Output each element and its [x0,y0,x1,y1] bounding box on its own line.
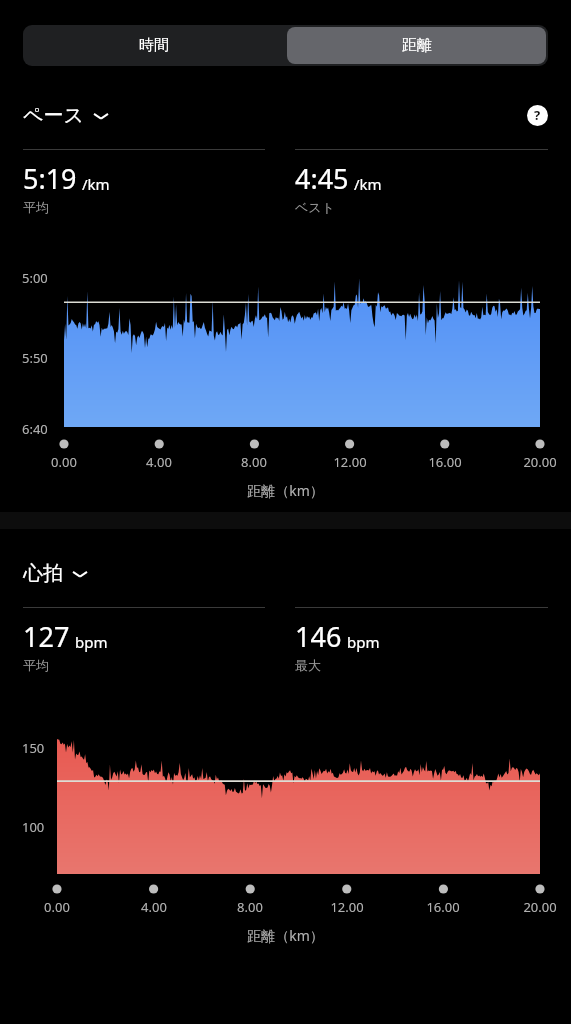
button[interactable]: Help [523,101,551,129]
staticText: 8.00 [222,453,286,471]
staticText: 16.00 [413,453,477,471]
staticText: 100 [22,818,45,836]
staticText: 12.00 [318,453,382,471]
button[interactable]: ペース [23,103,109,128]
button[interactable]: 距離 [287,27,546,64]
staticText: 距離 [402,36,432,55]
staticText: bpm [75,632,108,652]
staticText: 4.00 [122,898,186,916]
staticText: 距離（km） [0,926,571,945]
staticText: 127 [23,618,70,655]
staticText: ベスト [295,199,335,215]
staticText: 4:45 [295,160,349,197]
staticText: 8.00 [218,898,282,916]
staticText: 平均 [23,199,49,215]
staticText: 5:00 [22,269,48,287]
staticText: 距離（km） [0,481,571,500]
staticText: 146 [295,618,342,655]
staticText: 4.00 [127,453,191,471]
staticText: /km [82,174,110,194]
staticText: 時間 [139,36,169,55]
staticText: /km [354,174,382,194]
staticText: 20.00 [508,453,571,471]
staticText: 5:19 [23,160,77,197]
staticText: ペース [23,103,84,128]
staticText: 最大 [295,657,321,673]
staticText: 6:40 [22,420,48,438]
staticText: 0.00 [25,898,89,916]
staticText: 0.00 [32,453,96,471]
button[interactable]: 時間 [23,25,285,66]
staticText: ? [534,106,541,124]
staticText: 平均 [23,657,49,673]
staticText: 16.00 [411,898,475,916]
staticText: 20.00 [508,898,571,916]
staticText: 5:50 [22,349,48,367]
staticText: 12.00 [315,898,379,916]
button[interactable]: 心拍 [23,561,88,586]
staticText: 150 [22,739,45,757]
staticText: bpm [347,632,380,652]
staticText: 心拍 [23,561,63,586]
